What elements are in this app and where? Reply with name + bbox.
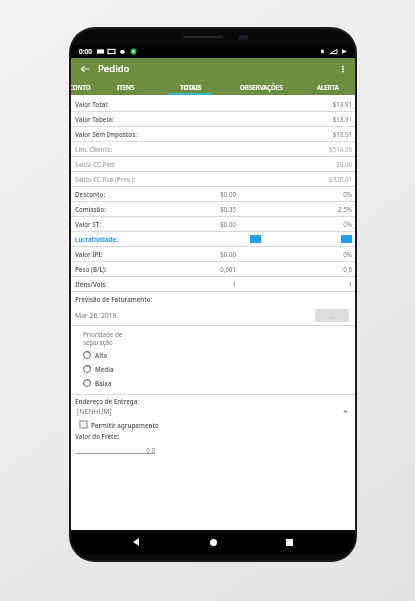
staticText: ALERTA (317, 83, 339, 91)
staticText: $13.91 (332, 115, 352, 123)
button[interactable]: Lim. Cliente: (71, 142, 355, 157)
button[interactable]: [NENHUM] (71, 405, 355, 418)
staticText: Pedido (98, 62, 130, 75)
button[interactable]: Media (71, 362, 355, 376)
staticText: $0.00 (196, 220, 236, 228)
staticText: Alta (95, 351, 108, 359)
staticText: Valor Sem Impostos: (75, 130, 137, 138)
staticText: Comissão: (75, 205, 106, 213)
staticText: 0,601 (196, 265, 236, 273)
staticText: $13.91 (332, 100, 352, 108)
staticText: Permitir agrupamento (91, 421, 159, 429)
staticText: 0,6 (343, 265, 352, 273)
button[interactable]: Recents (279, 532, 299, 552)
button[interactable]: Lucratividade: (71, 232, 355, 247)
staticText: Itens/Vols: (75, 280, 107, 288)
button[interactable]: CONTO (71, 79, 97, 95)
button[interactable]: Alta (71, 348, 355, 362)
staticText: ITENS (117, 83, 135, 91)
staticText: $0.00 (196, 250, 236, 258)
staticText: 0% (343, 250, 352, 258)
button[interactable]: Peso (B/L): (71, 262, 355, 277)
staticText: Prioridade de (83, 330, 123, 338)
button[interactable]: 0.0 (75, 446, 155, 454)
button[interactable]: Comissão: (71, 202, 355, 217)
staticText: $514.09 (329, 145, 352, 153)
staticText: Saldo CC Rca (Prev.): (75, 175, 136, 183)
staticText: Previsão de Faturamento: (75, 295, 153, 303)
button[interactable]: Saldo CC Ped: (71, 157, 355, 172)
button[interactable]: Back (127, 532, 147, 552)
button[interactable]: ITENS (111, 79, 141, 95)
staticText: Mar 26, 2019 (75, 311, 117, 320)
button[interactable]: Baixa (71, 376, 355, 390)
staticText: Baixa (95, 379, 112, 387)
button[interactable]: More options (336, 62, 350, 76)
staticText: TOTAIS (180, 83, 202, 91)
staticText: 1 (196, 280, 236, 288)
button[interactable]: TOTAIS (174, 79, 208, 95)
button[interactable]: Desconto: (71, 187, 355, 202)
button[interactable]: Itens/Vols: (71, 277, 355, 292)
staticText: separação (83, 338, 113, 346)
staticText: $13.91 (332, 130, 352, 138)
staticText: Lim. Cliente: (75, 145, 113, 153)
button[interactable]: ALERTA (311, 79, 345, 95)
staticText: 0% (343, 220, 352, 228)
staticText: Lucratividade: (75, 235, 118, 243)
staticText: 0% (343, 190, 352, 198)
staticText: 1 (348, 280, 352, 288)
staticText: Valor do Frete: (75, 432, 119, 440)
button[interactable]: Valor ST: (71, 217, 355, 232)
staticText: 0:00 (79, 47, 92, 56)
staticText: $0.35 (196, 205, 236, 213)
button[interactable]: Home (203, 532, 223, 552)
button[interactable]: Permitir agrupamento (71, 418, 355, 431)
staticText: Valor Tabela: (75, 115, 114, 123)
staticText: $0.00 (336, 160, 352, 168)
button[interactable]: Mar 26, 2019 (71, 305, 355, 325)
staticText: CONTO (71, 83, 91, 91)
staticText: 2,5% (338, 205, 352, 213)
button[interactable]: OBSERVAÇÕES (234, 79, 289, 95)
staticText: ... (330, 312, 335, 320)
staticText: Valor Total: (75, 100, 109, 108)
button[interactable]: Saldo CC Rca (Prev.): (71, 172, 355, 187)
staticText: Valor IPI: (75, 250, 103, 258)
staticText: Peso (B/L): (75, 265, 107, 273)
staticText: Saldo CC Ped: (75, 160, 116, 168)
staticText: Desconto: (75, 190, 106, 198)
button[interactable]: Back (77, 61, 93, 77)
staticText: Media (95, 365, 114, 373)
staticText: 0.0 (75, 446, 155, 454)
staticText: $0.00 (196, 190, 236, 198)
button[interactable]: Valor Sem Impostos: (71, 127, 355, 142)
staticText: Valor ST: (75, 220, 101, 228)
button[interactable]: Valor Total: (71, 97, 355, 112)
staticText: [NENHUM] (77, 407, 112, 416)
button[interactable]: Valor IPI: (71, 247, 355, 262)
staticText: OBSERVAÇÕES (240, 83, 283, 91)
button[interactable]: Valor Tabela: (71, 112, 355, 127)
staticText: $326.01 (329, 175, 352, 183)
staticText: Endereço de Entrega: (75, 397, 140, 405)
